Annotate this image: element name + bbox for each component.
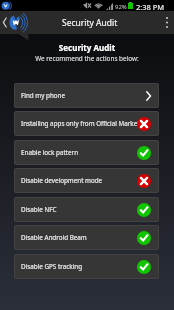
- button[interactable]: Disable development mode: [14, 168, 159, 193]
- staticText: Security Audit: [0, 42, 174, 53]
- staticText: Security Audit: [62, 17, 118, 29]
- button[interactable]: Find my phone: [14, 83, 159, 108]
- staticText: 92%: [115, 3, 127, 11]
- button[interactable]: Disable GPS tracking: [14, 254, 159, 279]
- button[interactable]: More options: [160, 13, 174, 32]
- button[interactable]: Installing apps only from Official Marke…: [14, 111, 159, 136]
- staticText: Disable Android Beam: [21, 233, 87, 242]
- staticText: Enable lock pattern: [21, 148, 79, 157]
- button[interactable]: Disable NFC: [14, 197, 159, 222]
- staticText: Disable development mode: [21, 176, 103, 185]
- button[interactable]: Disable Android Beam: [14, 225, 159, 250]
- staticText: Find my phone: [21, 91, 66, 100]
- staticText: Disable GPS tracking: [21, 262, 82, 271]
- button[interactable]: Back: [0, 15, 32, 30]
- staticText: We recommend the actions below:: [0, 54, 174, 63]
- staticText: 2:38 PM: [136, 2, 165, 12]
- staticText: Disable NFC: [21, 205, 57, 214]
- staticText: Installing apps only from Official Marke…: [21, 119, 140, 128]
- button[interactable]: Enable lock pattern: [14, 140, 159, 165]
